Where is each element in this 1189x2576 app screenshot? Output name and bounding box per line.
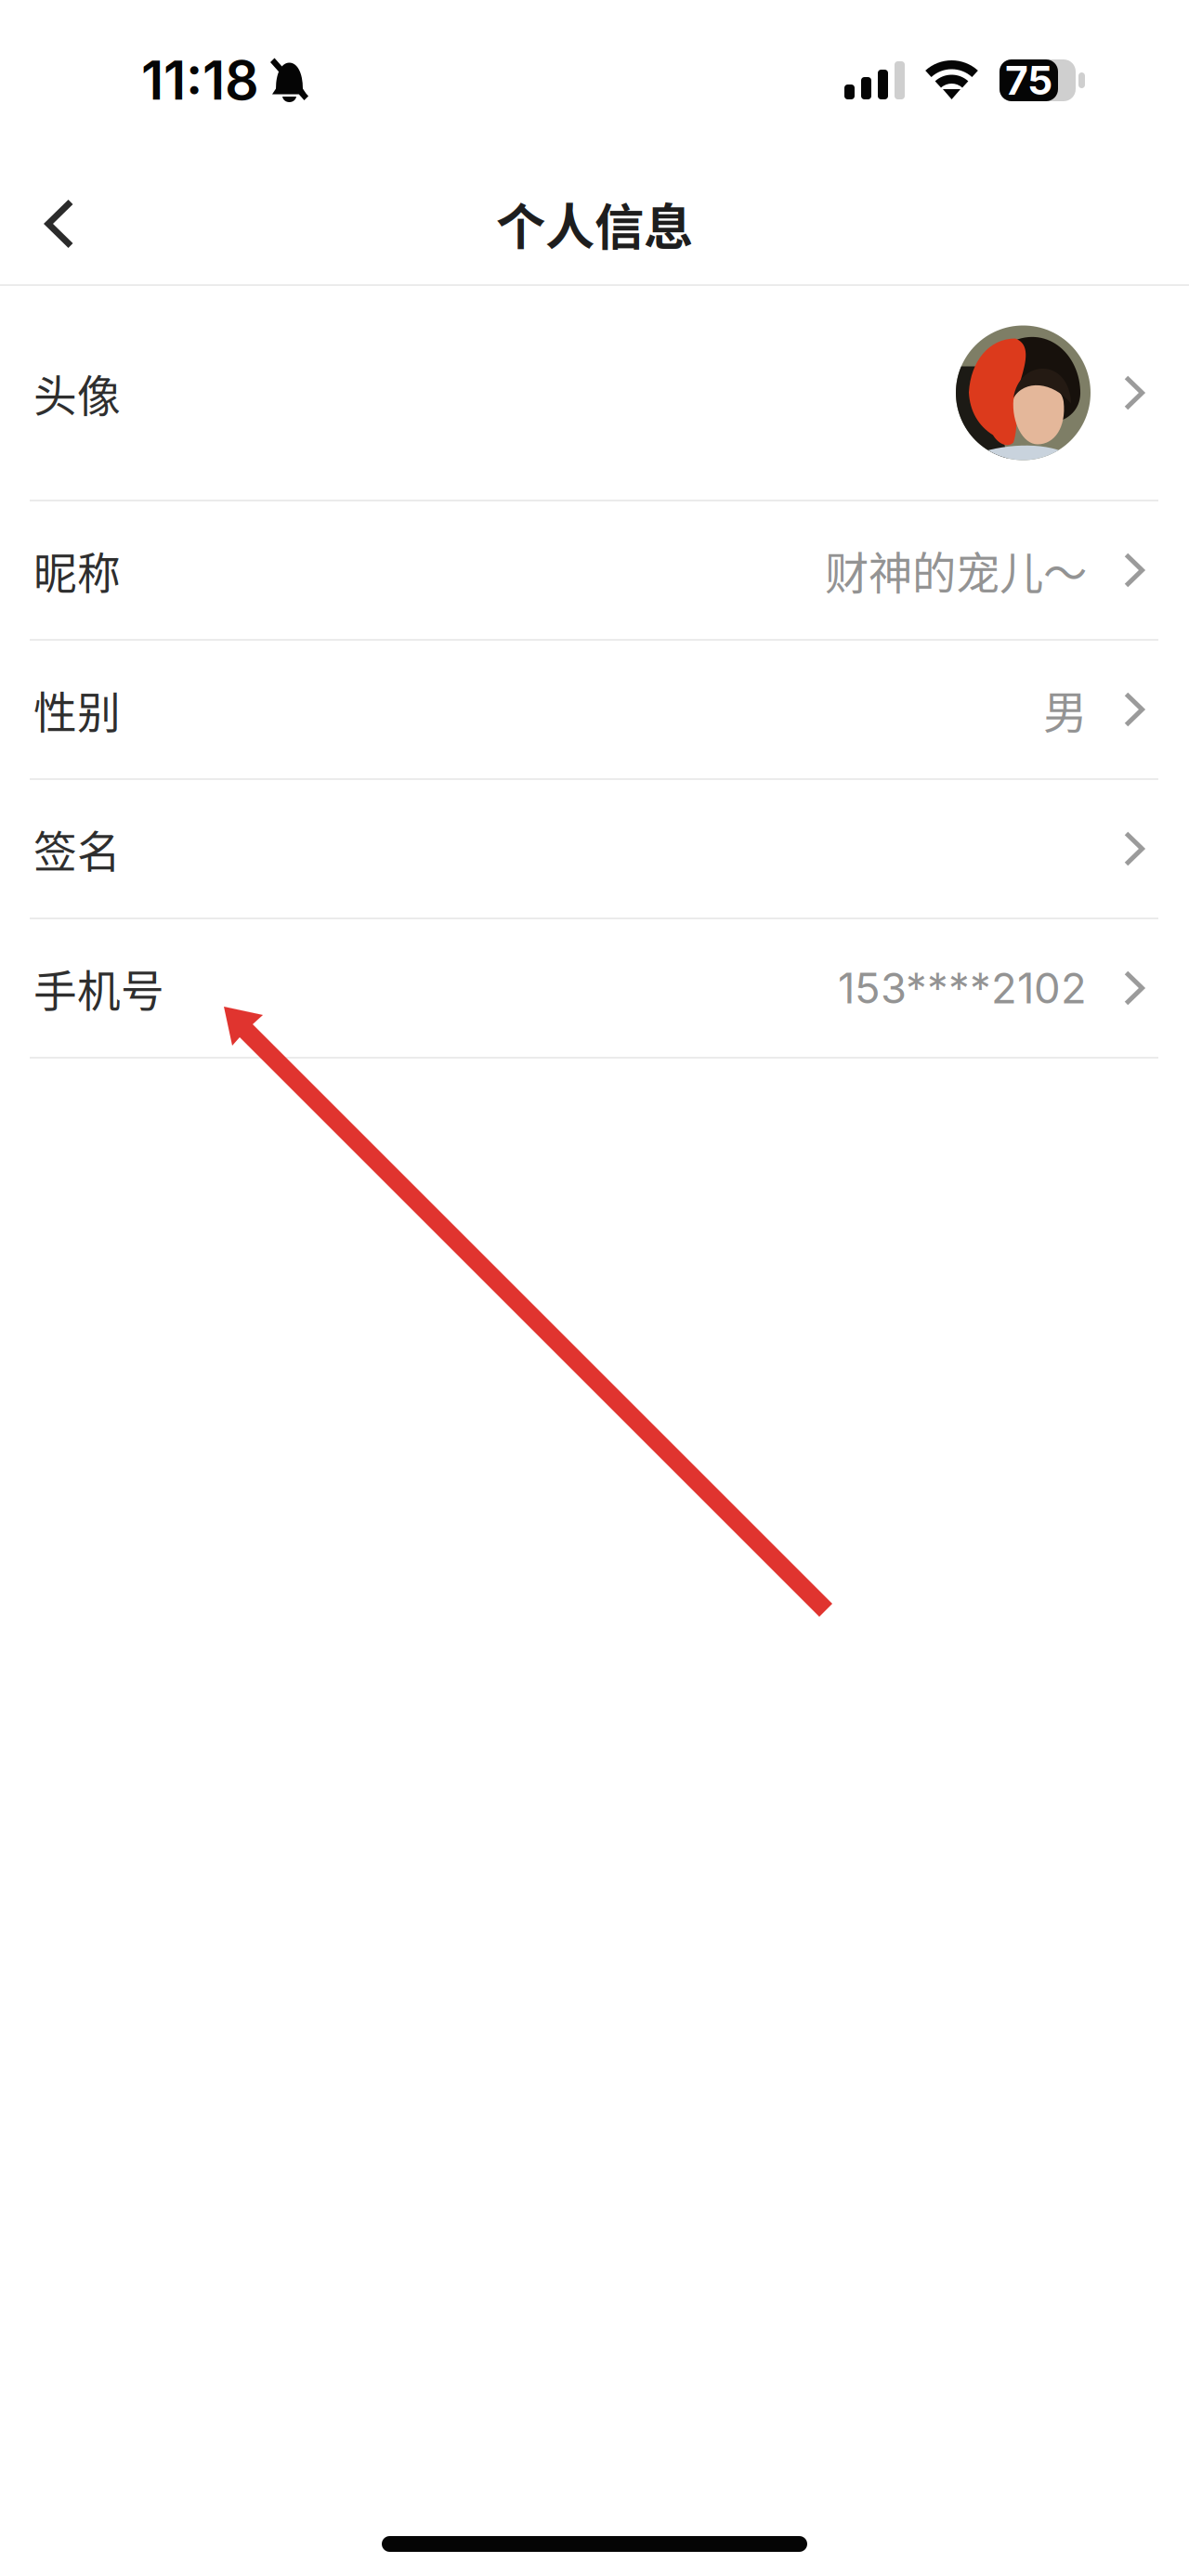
- staticText: 签名: [33, 817, 121, 880]
- staticText: 昵称: [33, 539, 121, 602]
- staticText: 153****2102: [838, 963, 1087, 1014]
- staticText: 11:18: [141, 48, 259, 113]
- button[interactable]: 性别: [0, 641, 1189, 778]
- staticText: 男: [1043, 678, 1087, 741]
- button[interactable]: 昵称: [0, 501, 1189, 639]
- staticText: 财神的宠儿～: [825, 538, 1087, 602]
- button[interactable]: 手机号: [0, 919, 1189, 1057]
- staticText: 性别: [33, 678, 121, 741]
- button[interactable]: 签名: [0, 780, 1189, 917]
- button[interactable]: Back: [13, 173, 106, 275]
- staticText: 头像: [33, 361, 121, 424]
- staticText: 个人信息: [496, 188, 693, 260]
- staticText: 75: [1005, 56, 1052, 104]
- staticText: 手机号: [33, 957, 164, 1019]
- button[interactable]: 头像: [0, 286, 1189, 500]
